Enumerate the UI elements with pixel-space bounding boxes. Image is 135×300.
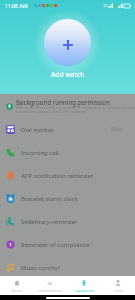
button[interactable]: Dial market [0,118,135,141]
staticText: 11:06 AM [5,2,28,9]
staticText: Reminder of compliance [21,241,90,249]
staticText: Home [11,288,22,293]
button[interactable]: mine [101,276,135,293]
staticText: When the Bluetooth connection is abnorma… [16,105,135,111]
button[interactable]: APP notification reminder [0,164,135,187]
staticText: reminders, please check the settings [16,109,87,115]
staticText: Dial market [21,126,54,134]
button[interactable]: Add watch [44,19,91,66]
staticText: Music control [21,264,59,272]
staticText: Incoming call [21,149,59,157]
button[interactable]: Bracelet alarm clock [0,187,135,210]
staticText: Sedentary reminder [21,218,78,226]
staticText: Background running permission [16,98,110,106]
button[interactable]: Sedentary reminder [0,210,135,233]
staticText: equipment [75,288,94,293]
button[interactable]: Background running permission [0,94,135,118]
button[interactable]: Reminder of compliance [0,233,135,256]
staticText: More [111,126,124,133]
staticText: mine [114,288,123,293]
button[interactable]: measurement [33,276,67,293]
staticText: measurement [38,288,62,293]
staticText: Bracelet alarm clock [21,195,78,203]
staticText: APP notification reminder [21,172,94,180]
staticText: Add watch [51,70,85,79]
button[interactable]: Music control [0,256,135,279]
button[interactable]: Home [0,276,33,293]
button[interactable]: Incoming call [0,141,135,164]
button[interactable]: equipment [67,276,101,293]
